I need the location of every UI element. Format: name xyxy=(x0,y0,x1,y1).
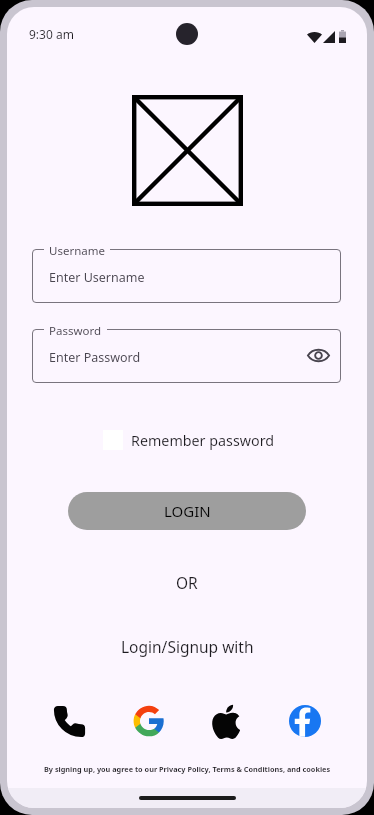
staticText: Remember password xyxy=(131,431,275,450)
button[interactable]: Password xyxy=(32,329,341,383)
button[interactable]: Sign in with Apple xyxy=(207,702,245,740)
button[interactable]: Sign in with Facebook xyxy=(286,702,324,740)
staticText: LOGIN xyxy=(164,501,211,521)
staticText: Login/Signup with xyxy=(121,636,254,657)
staticText: Username xyxy=(49,243,105,259)
button[interactable]: Sign in with Google xyxy=(130,702,168,740)
staticText: OR xyxy=(176,572,198,593)
staticText: Enter Username xyxy=(49,269,145,286)
staticText: By signing up, you agree to our Privacy … xyxy=(44,764,331,774)
button[interactable]: Show password xyxy=(305,342,331,368)
button[interactable]: Sign in with phone xyxy=(50,702,88,740)
button[interactable]: Username xyxy=(32,249,341,303)
staticText: Password xyxy=(49,323,102,339)
button[interactable]: Remember password xyxy=(94,425,281,455)
staticText: 9:30 am xyxy=(29,26,74,42)
staticText: Enter Password xyxy=(49,349,141,366)
button[interactable]: LOGIN xyxy=(68,492,306,530)
